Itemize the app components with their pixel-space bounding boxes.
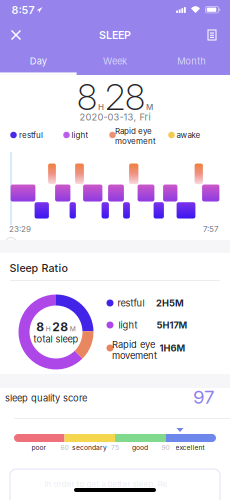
staticText: Month	[177, 55, 206, 66]
staticText: excellent	[175, 444, 204, 451]
staticText: total sleep	[33, 333, 78, 344]
staticText: 2020-03-13, Fri	[79, 111, 150, 122]
staticText: restful	[19, 130, 43, 140]
staticText: Rapid eye	[115, 126, 152, 136]
staticText: Rapid eye	[112, 339, 155, 350]
button[interactable]: Month	[154, 49, 230, 73]
staticText: poor	[31, 444, 46, 451]
staticText: Day	[30, 55, 47, 66]
button[interactable]	[5, 24, 26, 45]
staticText: 8	[36, 320, 44, 334]
staticText: 1H6M	[159, 342, 185, 353]
button[interactable]: Week	[77, 49, 153, 73]
button[interactable]	[5, 237, 16, 248]
button[interactable]: In order to get a better sleep. Re	[10, 469, 220, 500]
staticText: 7:57	[203, 224, 219, 234]
staticText: 28	[52, 320, 68, 334]
staticText: 75	[111, 444, 119, 451]
staticText: 60	[60, 444, 68, 451]
staticText: light	[118, 319, 137, 330]
staticText: 23:29	[9, 224, 31, 234]
staticText: restful	[117, 297, 144, 308]
staticText: M	[146, 102, 153, 112]
staticText: H	[98, 102, 104, 112]
staticText: 5H17M	[156, 319, 187, 330]
staticText: 2H5M	[156, 297, 184, 308]
staticText: Week	[103, 55, 127, 66]
staticText: H	[46, 325, 51, 333]
staticText: movement	[115, 136, 156, 146]
button[interactable]	[203, 25, 221, 45]
staticText: awake	[176, 130, 200, 140]
staticText: SLEEP	[99, 29, 131, 41]
staticText: Sleep Ratio	[9, 262, 67, 274]
staticText: sleep quality score	[5, 392, 87, 403]
staticText: good	[132, 444, 148, 451]
staticText: light	[71, 130, 88, 140]
staticText: movement	[112, 350, 157, 361]
staticText: 97	[193, 386, 215, 408]
staticText: 8	[77, 75, 97, 119]
staticText: In order to get a better sleep. Re	[44, 479, 167, 489]
staticText: 8:57	[11, 4, 34, 16]
staticText: 28	[105, 75, 145, 119]
button[interactable]: Day	[0, 49, 76, 73]
staticText: 90	[161, 444, 169, 451]
staticText: M	[70, 325, 76, 333]
staticText: secondary	[72, 444, 107, 451]
